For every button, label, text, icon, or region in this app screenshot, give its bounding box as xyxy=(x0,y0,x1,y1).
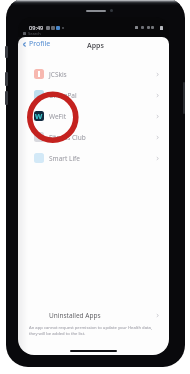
staticText: Search xyxy=(28,31,41,35)
staticText: W xyxy=(35,111,43,121)
staticText: Apps xyxy=(87,41,104,51)
button[interactable]: JCSkis xyxy=(18,69,169,90)
staticText: 09:49 xyxy=(29,24,44,31)
staticText: Fitness Club xyxy=(49,133,86,142)
staticText: UnionPal xyxy=(49,91,77,100)
staticText: they will be added to the list. xyxy=(29,331,86,337)
staticText: WeFit xyxy=(49,112,66,121)
button[interactable]: Smart Life xyxy=(18,153,169,174)
staticText: JCSkis xyxy=(49,70,67,79)
button[interactable]: Uninstalled Apps xyxy=(18,311,169,325)
staticText: Uninstalled Apps xyxy=(49,311,101,320)
staticText: Smart Life xyxy=(49,154,80,163)
staticText: Profile xyxy=(29,39,51,49)
button[interactable]: UnionPal xyxy=(18,90,169,111)
button[interactable]: W xyxy=(18,111,169,132)
button[interactable]: Profile xyxy=(18,39,169,49)
button[interactable]: Fitness Club xyxy=(18,132,169,153)
staticText: An app cannot request permission to upda… xyxy=(29,325,152,331)
